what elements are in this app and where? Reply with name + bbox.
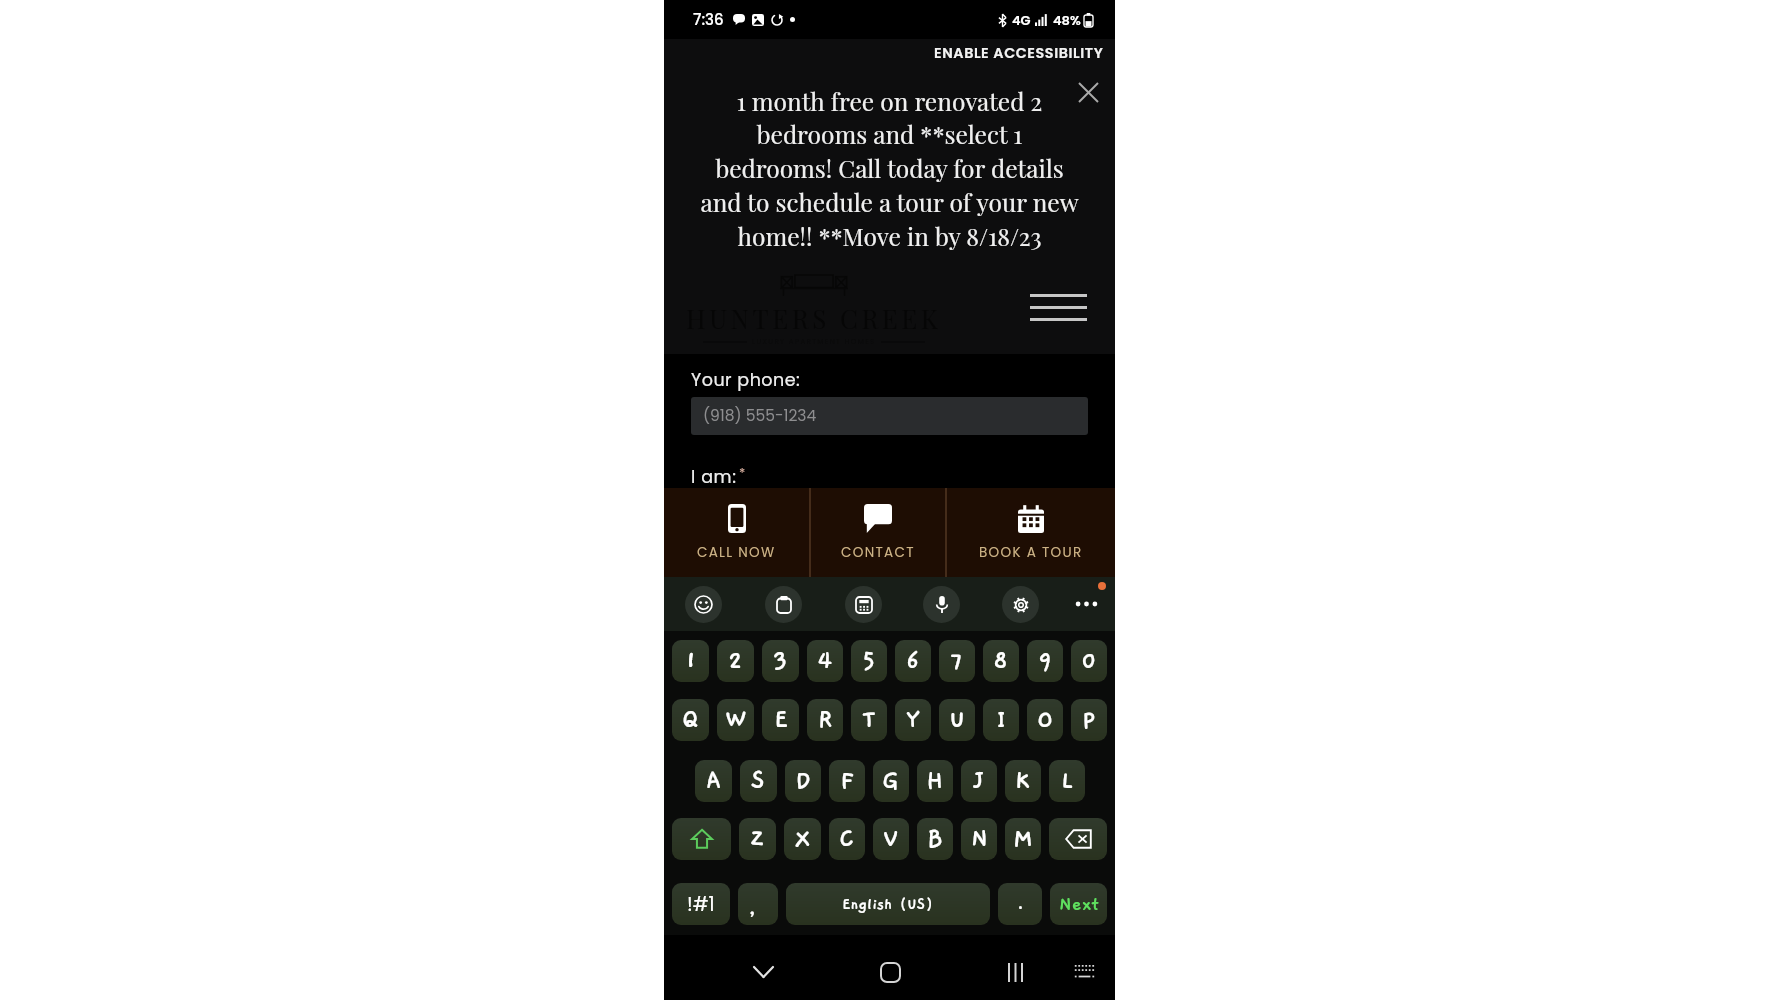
button[interactable]: Q <box>672 699 709 741</box>
button[interactable]: CONTACT <box>811 488 945 577</box>
button[interactable]: 0 <box>1071 640 1107 682</box>
button[interactable]: O <box>1027 699 1063 741</box>
button[interactable]: Z <box>739 818 776 860</box>
button[interactable]: T <box>851 699 887 741</box>
staticText: Z <box>750 825 765 853</box>
button[interactable]: , <box>738 883 778 925</box>
staticText: , <box>748 897 757 921</box>
button[interactable]: Hide keyboard <box>742 941 784 1000</box>
staticText: ENABLE ACCESSIBILITY <box>934 43 1104 63</box>
staticText: H <box>926 767 944 795</box>
button[interactable]: 2 <box>717 640 754 682</box>
button[interactable]: Home <box>869 941 911 1000</box>
button[interactable]: S <box>740 760 777 802</box>
button[interactable]: 8 <box>983 640 1019 682</box>
button[interactable]: J <box>961 760 997 802</box>
staticText: * <box>739 463 746 481</box>
button[interactable]: 6 <box>895 640 931 682</box>
staticText: 4G <box>1012 11 1031 29</box>
staticText: R <box>818 706 833 734</box>
button[interactable]: Emoji <box>685 586 722 623</box>
button[interactable]: G <box>873 760 909 802</box>
staticText: (918) 555-1234 <box>703 405 817 427</box>
button[interactable]: Backspace <box>1049 818 1107 860</box>
staticText: F <box>840 767 854 795</box>
button[interactable]: Menu <box>1020 276 1096 338</box>
staticText: O <box>1037 706 1053 734</box>
staticText: 48% <box>1053 11 1081 29</box>
button[interactable]: Close <box>1069 73 1107 111</box>
button[interactable]: N <box>961 818 997 860</box>
button[interactable]: B <box>917 818 953 860</box>
staticText: N <box>971 825 988 853</box>
button[interactable]: R <box>807 699 843 741</box>
button[interactable]: P <box>1071 699 1107 741</box>
button[interactable]: Voice input <box>923 586 960 623</box>
button[interactable]: ENABLE ACCESSIBILITY <box>664 39 1115 66</box>
button[interactable]: 1 <box>672 640 709 682</box>
staticText: M <box>1013 825 1033 853</box>
staticText: CALL NOW <box>697 543 776 562</box>
staticText: BOOK A TOUR <box>979 543 1083 562</box>
button[interactable]: 3 <box>762 640 799 682</box>
staticText: Q <box>682 706 699 734</box>
staticText: 4 <box>817 647 833 675</box>
staticText: J <box>974 767 985 795</box>
button[interactable]: V <box>873 818 909 860</box>
button[interactable]: E <box>762 699 799 741</box>
button[interactable]: D <box>785 760 821 802</box>
button[interactable]: Keyboard switcher <box>1063 941 1105 1000</box>
button[interactable]: . <box>998 883 1042 925</box>
staticText: Your phone: <box>691 368 801 393</box>
button[interactable]: Next <box>1050 883 1107 925</box>
staticText: Y <box>906 706 920 734</box>
staticText: U <box>949 706 966 734</box>
staticText: G <box>882 767 900 795</box>
staticText: P <box>1082 706 1096 734</box>
button[interactable]: H <box>917 760 953 802</box>
button[interactable]: Y <box>895 699 931 741</box>
button[interactable]: Settings <box>1002 586 1039 623</box>
staticText: I am: <box>691 465 737 490</box>
button[interactable]: I <box>983 699 1019 741</box>
button[interactable]: Keyboard modes <box>845 586 882 623</box>
staticText: X <box>795 825 811 853</box>
button[interactable]: 7 <box>939 640 975 682</box>
button[interactable]: More options <box>1067 585 1105 623</box>
button[interactable]: Shift <box>672 818 731 860</box>
button[interactable]: L <box>1049 760 1085 802</box>
button[interactable]: 5 <box>851 640 887 682</box>
staticText: CONTACT <box>841 543 915 562</box>
staticText: 3 <box>773 647 788 675</box>
button[interactable]: CALL NOW <box>664 488 809 577</box>
button[interactable]: U <box>939 699 975 741</box>
button[interactable]: K <box>1005 760 1041 802</box>
staticText: . <box>1017 894 1024 914</box>
button[interactable]: 9 <box>1027 640 1063 682</box>
staticText: I <box>996 706 1007 734</box>
staticText: 7 <box>950 647 964 675</box>
staticText: 9 <box>1038 647 1053 675</box>
staticText: 1 <box>685 647 697 675</box>
button[interactable]: F <box>829 760 865 802</box>
staticText: E <box>774 706 788 734</box>
button[interactable]: C <box>829 818 865 860</box>
button[interactable]: English (US) <box>786 883 990 925</box>
button[interactable]: !#1 <box>672 883 730 925</box>
staticText: W <box>725 706 747 734</box>
button[interactable]: BOOK A TOUR <box>947 488 1115 577</box>
button[interactable]: (918) 555-1234 <box>691 397 1088 435</box>
button[interactable]: Recents <box>994 941 1036 1000</box>
staticText: 8 <box>993 647 1009 675</box>
staticText: C <box>839 825 855 853</box>
button[interactable]: A <box>695 760 732 802</box>
button[interactable]: W <box>717 699 754 741</box>
button[interactable]: Clipboard <box>765 586 802 623</box>
button[interactable]: X <box>784 818 821 860</box>
button[interactable]: 4 <box>807 640 843 682</box>
button[interactable]: M <box>1005 818 1041 860</box>
staticText: 0 <box>1081 647 1098 675</box>
staticText: V <box>883 825 899 853</box>
